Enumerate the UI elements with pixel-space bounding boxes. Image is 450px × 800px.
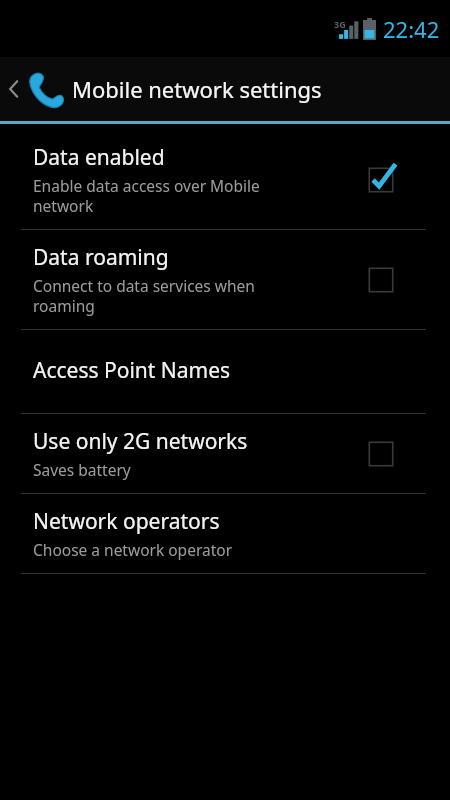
staticText: 3G [334,18,346,30]
button[interactable]: Data roaming [0,230,450,329]
staticText: Data enabled [33,143,165,172]
staticText: Data roaming [33,243,169,272]
staticText: Connect to data services when roaming [33,275,255,316]
button[interactable]: Use only 2G networks [0,414,450,493]
staticText: Access Point Names [33,356,231,385]
button[interactable]: Data enabled [0,130,450,229]
button[interactable]: Access Point Names [0,330,450,413]
staticText: Mobile network settings [72,74,322,104]
button[interactable]: Network operators [0,494,450,573]
staticText: Choose a network operator [33,539,233,560]
staticText: Network operators [33,507,220,536]
staticText: Use only 2G networks [33,427,248,456]
staticText: Saves battery [33,459,131,480]
staticText: 22:42 [383,14,440,44]
staticText: Enable data access over Mobile network [33,175,260,216]
button[interactable]: Navigate up, Mobile network settings [0,57,450,121]
